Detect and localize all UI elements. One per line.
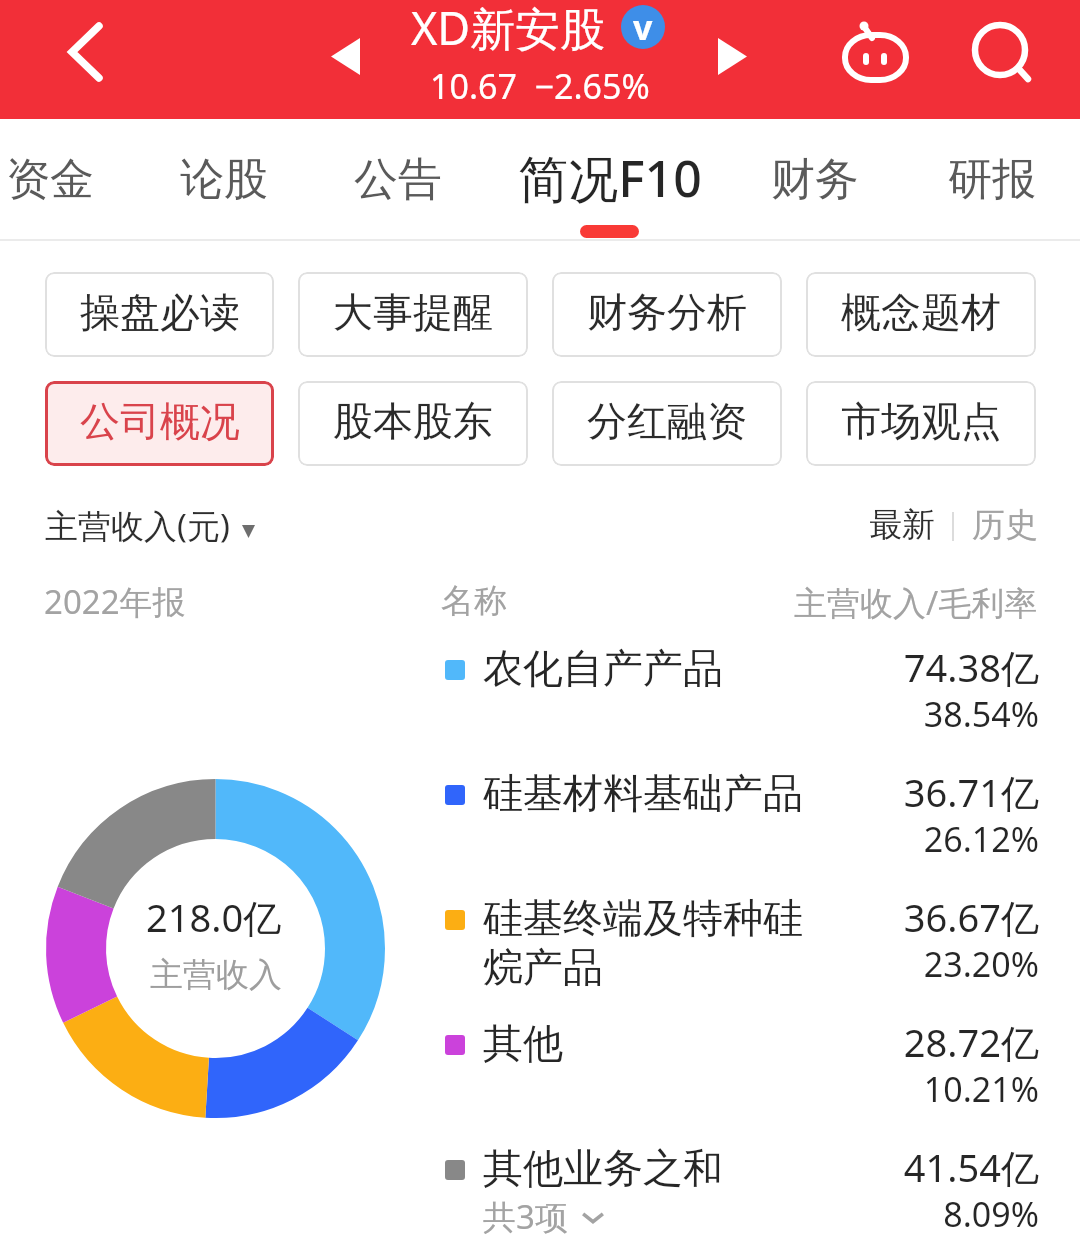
button[interactable]: 论股 — [144, 119, 304, 238]
staticText: 主营收入(元) — [45, 503, 230, 548]
staticText: 23.20% — [799, 941, 1039, 987]
staticText: 26.12% — [799, 816, 1039, 862]
staticText: 8.09% — [799, 1191, 1039, 1237]
staticText: 36.67亿 — [799, 891, 1039, 943]
button[interactable]: 历史 — [958, 496, 1050, 558]
staticText: 其他业务之和 — [483, 1143, 723, 1193]
button[interactable]: AI assistant — [820, 0, 930, 110]
staticText: v — [633, 5, 653, 48]
staticText: 其他 — [483, 1018, 563, 1068]
staticText: XD新安股 — [411, 0, 606, 58]
staticText: 财务分析 — [587, 287, 747, 337]
button[interactable]: 市场观点 — [806, 381, 1036, 466]
staticText: 硅基终端及特种硅 烷产品 — [483, 893, 803, 992]
staticText: 大事提醒 — [333, 287, 493, 337]
button[interactable]: 硅基终端及特种硅 烷产品 — [440, 889, 1038, 1007]
staticText: 36.71亿 — [799, 766, 1039, 818]
staticText: 资金 — [6, 152, 94, 207]
staticText: 概念题材 — [841, 287, 1001, 337]
button[interactable]: 其他业务之和 — [440, 1139, 1038, 1242]
staticText: 公告 — [354, 152, 442, 207]
button[interactable]: 硅基材料基础产品 — [440, 764, 1038, 882]
staticText: 操盘必读 — [80, 287, 240, 337]
staticText: 10.67 −2.65% — [430, 63, 650, 109]
staticText: 简况F10 — [518, 144, 702, 212]
button[interactable]: 财务 — [735, 119, 895, 238]
button[interactable]: 其他 — [440, 1014, 1038, 1132]
staticText: 研报 — [948, 152, 1036, 207]
button[interactable]: 分红融资 — [552, 381, 782, 466]
staticText: 公司概况 — [80, 396, 240, 446]
staticText: 2022年报 — [44, 579, 186, 624]
staticText: 硅基材料基础产品 — [483, 768, 803, 818]
button[interactable]: Back — [32, 0, 142, 110]
staticText: 市场观点 — [841, 396, 1001, 446]
staticText: 最新 — [869, 504, 935, 546]
staticText: 38.54% — [799, 691, 1039, 737]
button[interactable]: 公告 — [318, 119, 478, 238]
staticText: 主营收入 — [150, 954, 282, 996]
button[interactable]: 操盘必读 — [45, 272, 274, 357]
button[interactable]: 简况F10 — [505, 119, 715, 238]
staticText: 农化自产产品 — [483, 643, 723, 693]
button[interactable]: 概念题材 — [806, 272, 1036, 357]
button[interactable]: Previous stock — [310, 18, 390, 98]
staticText: 历史 — [972, 504, 1038, 546]
staticText: 218.0亿 — [146, 891, 282, 943]
button[interactable]: 最新 — [855, 496, 945, 558]
staticText: 41.54亿 — [799, 1141, 1039, 1193]
button[interactable]: 财务分析 — [552, 272, 782, 357]
staticText: 28.72亿 — [799, 1016, 1039, 1068]
button[interactable]: 大事提醒 — [298, 272, 528, 357]
staticText: 10.21% — [799, 1066, 1039, 1112]
button[interactable]: 资金 — [0, 119, 130, 238]
staticText: 财务 — [771, 152, 859, 207]
staticText: 名称 — [441, 580, 507, 622]
button[interactable]: Search — [945, 0, 1055, 110]
button[interactable]: 农化自产产品 — [440, 639, 1038, 757]
staticText: 共3项 — [483, 1194, 568, 1239]
staticText: 分红融资 — [587, 396, 747, 446]
button[interactable]: 研报 — [912, 119, 1072, 238]
button[interactable]: 公司概况 — [45, 381, 274, 466]
staticText: 论股 — [180, 152, 268, 207]
staticText: 股本股东 — [333, 396, 493, 446]
staticText: 主营收入/毛利率 — [794, 580, 1038, 625]
staticText: 74.38亿 — [799, 641, 1039, 693]
button[interactable]: Next stock — [688, 18, 768, 98]
button[interactable]: 股本股东 — [298, 381, 528, 466]
button[interactable]: 主营收入(元) — [36, 496, 266, 558]
